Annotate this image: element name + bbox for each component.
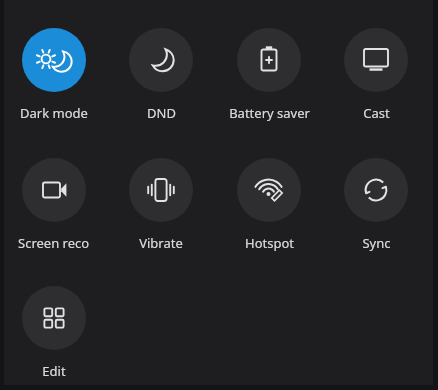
button[interactable]: DND xyxy=(108,28,214,122)
button[interactable]: Dark mode xyxy=(1,28,107,122)
staticText: Vibrate xyxy=(139,234,183,252)
staticText: Hotspot xyxy=(245,234,294,252)
staticText: DND xyxy=(147,104,176,122)
staticText: Cast xyxy=(363,104,390,122)
button[interactable]: Screen record xyxy=(1,158,107,252)
staticText: Edit xyxy=(42,362,66,380)
button[interactable]: Vibrate xyxy=(108,158,214,252)
staticText: Dark mode xyxy=(20,104,88,122)
staticText: Sync xyxy=(362,234,391,252)
button[interactable]: Sync xyxy=(323,158,429,252)
button[interactable]: Battery saver xyxy=(216,28,322,122)
button[interactable]: Cast xyxy=(323,28,429,122)
button[interactable]: Edit xyxy=(1,286,107,380)
staticText: Screen record xyxy=(18,234,90,252)
staticText: Battery saver xyxy=(229,104,310,122)
button[interactable]: Hotspot xyxy=(216,158,322,252)
